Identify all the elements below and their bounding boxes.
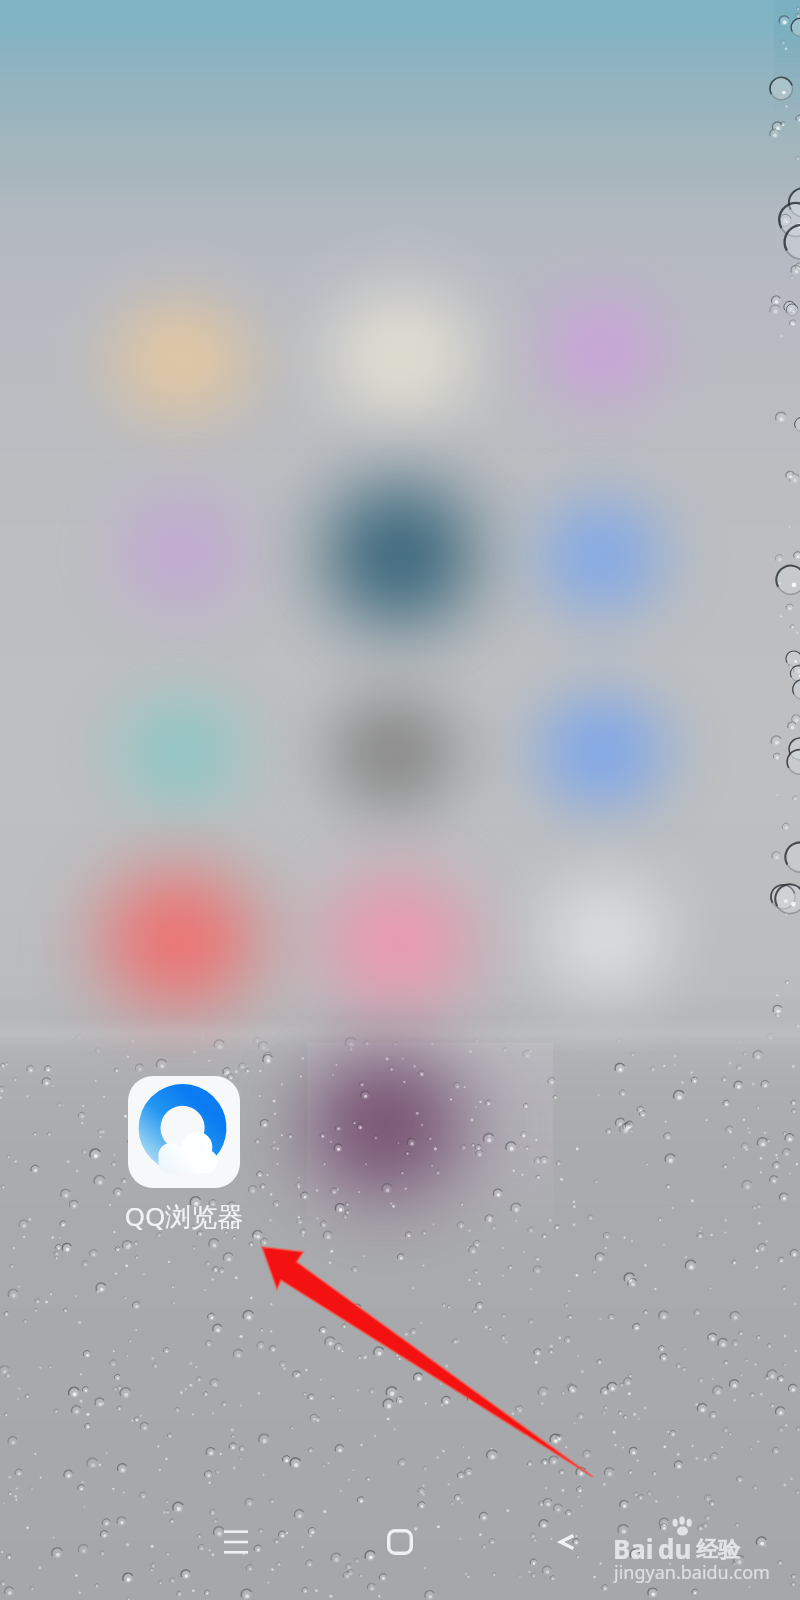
staticText: du xyxy=(658,1531,692,1566)
button[interactable]: QQ浏览器 xyxy=(110,1076,258,1234)
staticText: Bai xyxy=(613,1531,654,1566)
button[interactable]: Home xyxy=(354,1496,446,1588)
staticText: QQ浏览器 xyxy=(110,1198,258,1234)
button[interactable]: Back xyxy=(521,1496,613,1588)
staticText: 经验 xyxy=(696,1536,740,1564)
staticText: jingyan.baidu.com xyxy=(614,1560,770,1585)
button[interactable]: Recent apps xyxy=(190,1496,282,1588)
